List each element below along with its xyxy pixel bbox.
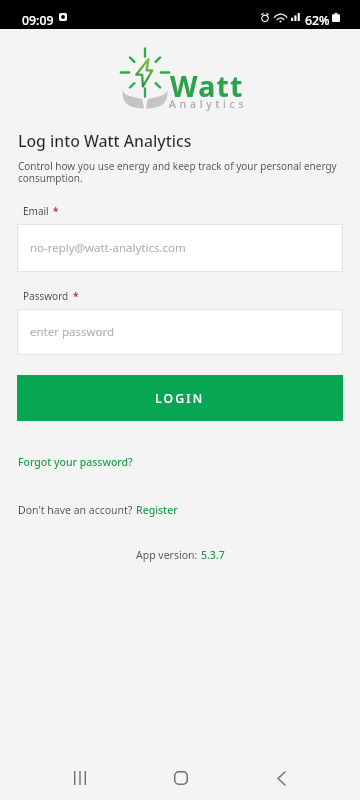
staticText: Analytics bbox=[169, 97, 248, 111]
staticText: App version: bbox=[136, 548, 201, 562]
staticText: Watt bbox=[170, 67, 244, 106]
button[interactable]: no-reply@watt-analytics.com bbox=[17, 224, 343, 272]
staticText: Password bbox=[23, 289, 69, 303]
button[interactable]: Back bbox=[259, 756, 303, 800]
staticText: Log into Watt Analytics bbox=[18, 130, 192, 152]
staticText: * bbox=[73, 289, 79, 303]
staticText: 5.3.7 bbox=[201, 548, 225, 562]
button[interactable]: enter password bbox=[17, 309, 343, 355]
staticText: Email bbox=[23, 204, 49, 218]
staticText: Control how you use energy and keep trac… bbox=[18, 159, 338, 185]
staticText: no-reply@watt-analytics.com bbox=[30, 240, 186, 256]
button[interactable]: Home bbox=[159, 756, 203, 800]
staticText: LOGIN bbox=[155, 390, 205, 407]
staticText: 09:09 bbox=[22, 12, 54, 29]
staticText: * bbox=[53, 204, 59, 218]
staticText: Don't have an account? bbox=[18, 503, 136, 517]
staticText: 62% bbox=[305, 12, 330, 29]
button[interactable]: LOGIN bbox=[17, 375, 343, 421]
button[interactable]: Recent apps bbox=[58, 756, 102, 800]
staticText: enter password bbox=[30, 324, 115, 340]
button[interactable]: Register bbox=[136, 503, 178, 517]
button[interactable]: Forgot your password? bbox=[18, 455, 133, 469]
